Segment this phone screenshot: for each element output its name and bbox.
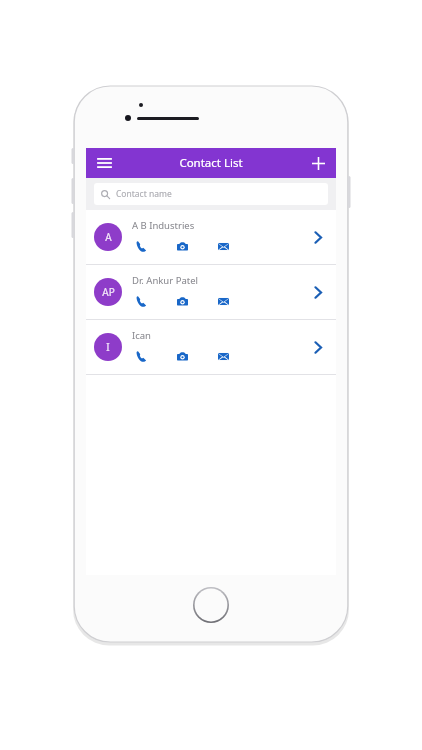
staticText: Ican [132, 329, 151, 342]
staticText: I [106, 340, 110, 354]
button[interactable]: Camera for Dr. Ankur Patel [173, 292, 191, 310]
button[interactable]: Call Dr. Ankur Patel [132, 292, 150, 310]
button[interactable]: Email Ican [214, 347, 232, 365]
button[interactable]: AP [86, 265, 336, 319]
button[interactable]: A [86, 210, 336, 264]
button[interactable]: Camera for Ican [173, 347, 191, 365]
button[interactable]: Add contact [306, 151, 330, 175]
button[interactable]: Email A B Industries [214, 237, 232, 255]
staticText: Dr. Ankur Patel [132, 274, 198, 287]
button[interactable]: Open Dr. Ankur Patel [306, 280, 330, 304]
button[interactable]: Email Dr. Ankur Patel [214, 292, 232, 310]
staticText: AP [102, 285, 115, 299]
button[interactable]: Open A B Industries [306, 225, 330, 249]
button[interactable]: I [86, 320, 336, 374]
button[interactable]: Call A B Industries [132, 237, 150, 255]
staticText: A [105, 230, 112, 244]
button[interactable]: Contact name [94, 183, 328, 205]
button[interactable]: Menu [92, 150, 116, 176]
button[interactable]: Call Ican [132, 347, 150, 365]
staticText: Contact List [179, 155, 243, 171]
staticText: A B Industries [132, 219, 195, 232]
button[interactable]: Camera for A B Industries [173, 237, 191, 255]
button[interactable]: Open Ican [306, 335, 330, 359]
staticText: Contact name [116, 188, 172, 200]
